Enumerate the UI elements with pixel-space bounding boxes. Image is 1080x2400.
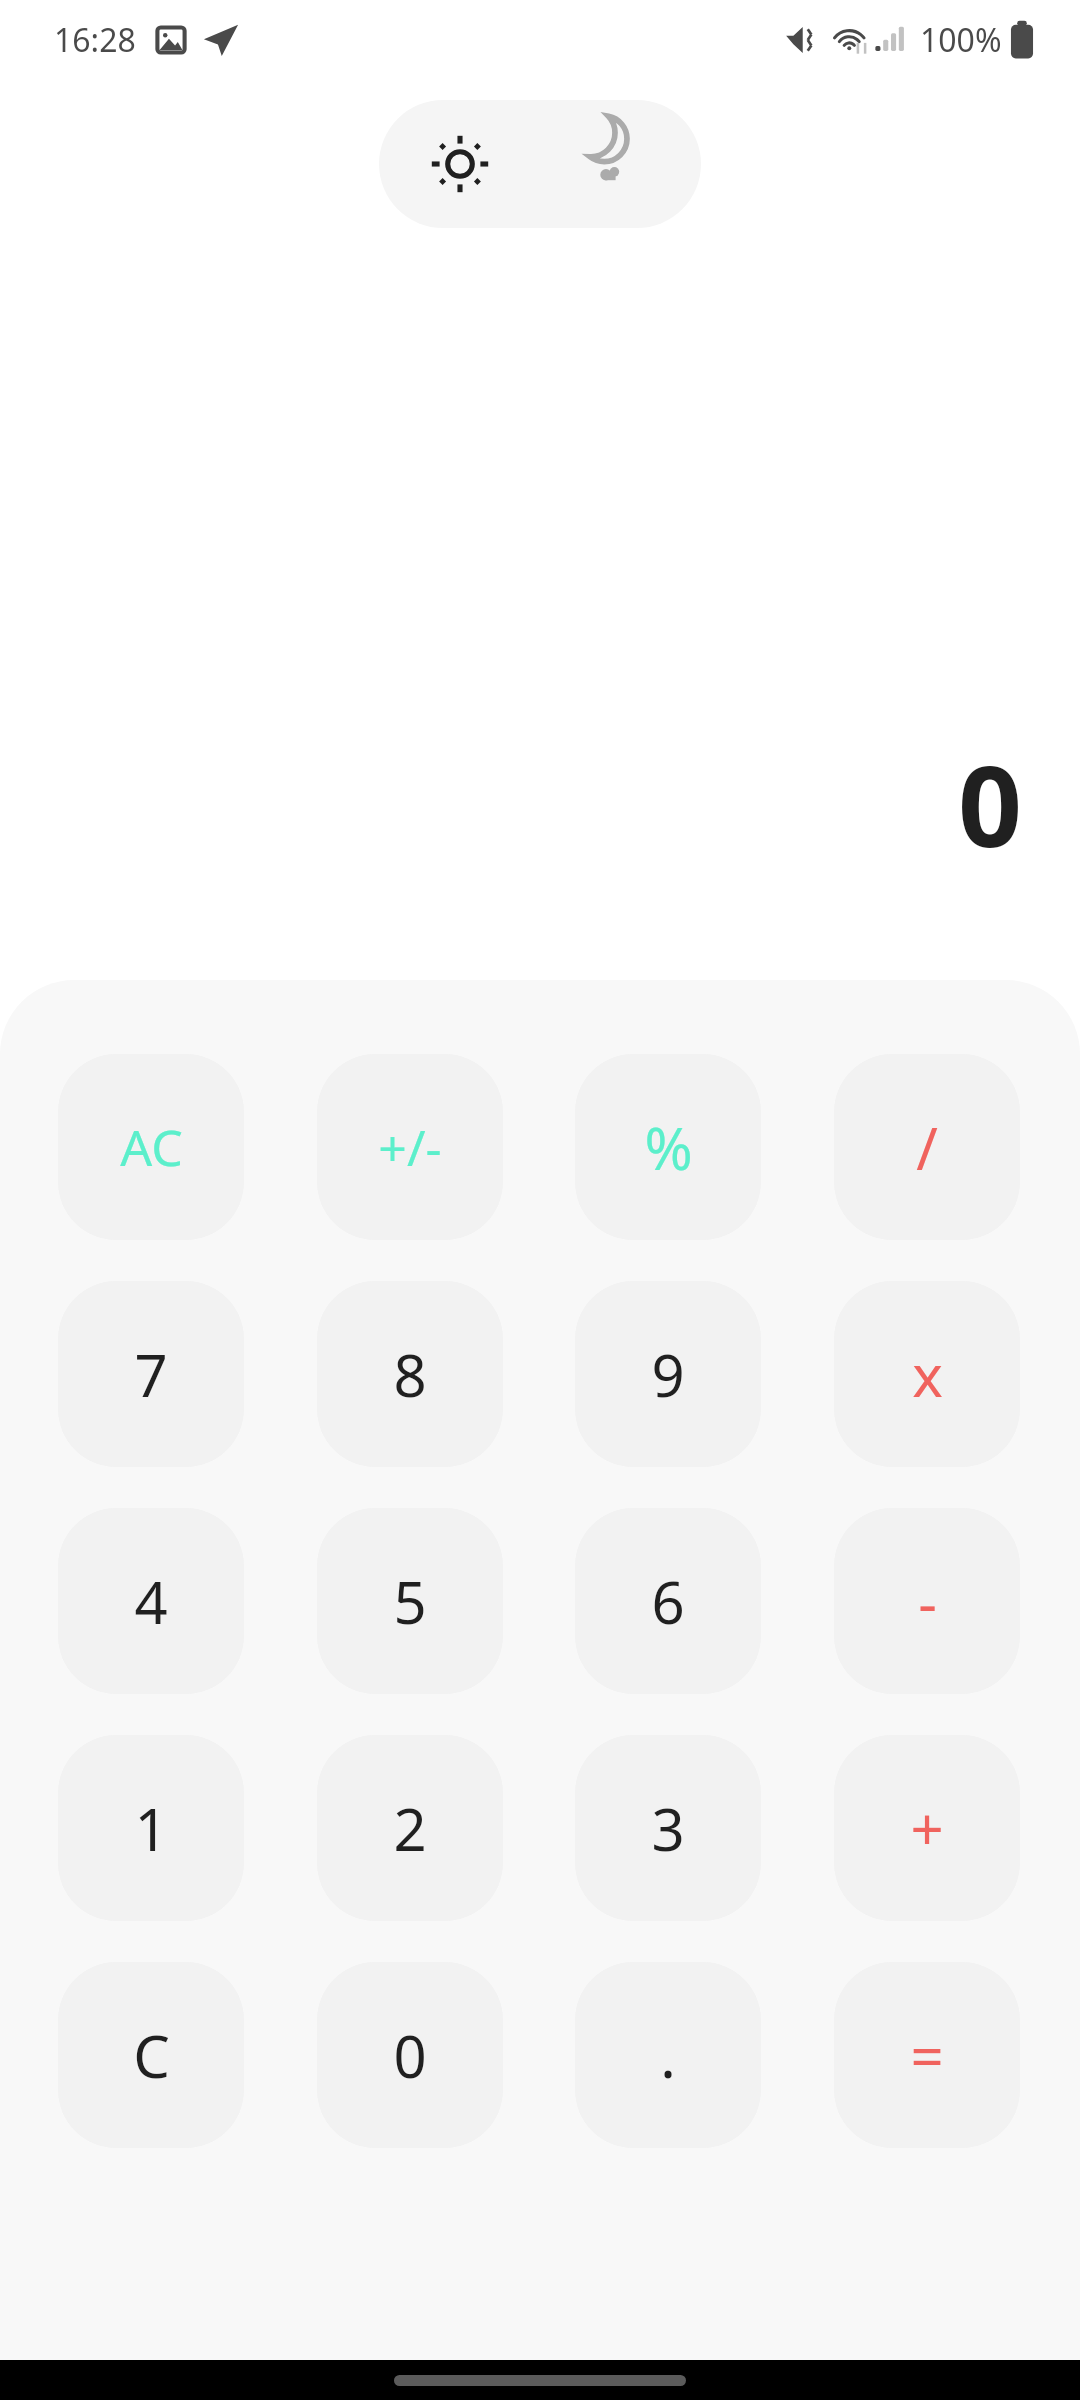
button[interactable]: 3 [575,1735,761,1921]
button[interactable]: Equals [834,1962,1020,2148]
button[interactable]: Multiply [834,1281,1020,1467]
button[interactable]: Divide [834,1054,1020,1240]
button[interactable]: 1 [58,1735,244,1921]
button[interactable]: 0 [317,1962,503,2148]
button[interactable]: 6 [575,1508,761,1694]
staticText: 6 [651,1562,685,1641]
staticText: 8 [393,1335,427,1414]
staticText: 9 [651,1335,685,1414]
staticText: 7 [134,1335,168,1414]
staticText: C [133,2016,170,2095]
staticText: x [912,1335,943,1414]
staticText: 3 [651,1789,685,1868]
button[interactable]: Minus [834,1508,1020,1694]
button[interactable]: 5 [317,1508,503,1694]
button[interactable]: 2 [317,1735,503,1921]
staticText: 0 [393,2016,427,2095]
staticText: - [918,1562,937,1641]
staticText: / [916,1108,938,1187]
staticText: 2 [393,1789,427,1868]
button[interactable]: 7 [58,1281,244,1467]
staticText: 0 [957,727,1022,880]
staticText: 100% [920,18,1002,62]
button[interactable]: 8 [317,1281,503,1467]
button[interactable]: Negate [317,1054,503,1240]
button[interactable]: 9 [575,1281,761,1467]
button[interactable]: 4 [58,1508,244,1694]
staticText: +/- [378,1113,442,1181]
staticText: AC [120,1113,183,1181]
staticText: 5 [393,1562,427,1641]
button[interactable]: Percent [575,1054,761,1240]
staticText: 4 [134,1562,168,1641]
staticText: = [910,2016,944,2095]
button[interactable]: Decimal point [575,1962,761,2148]
button[interactable]: Dark theme [540,100,701,228]
staticText: % [644,1108,693,1187]
button[interactable]: All clear [58,1054,244,1240]
button[interactable]: Plus [834,1735,1020,1921]
button[interactable]: Light theme [379,100,540,228]
staticText: . [660,2016,676,2095]
button[interactable]: Clear [58,1962,244,2148]
staticText: + [910,1789,944,1868]
staticText: 1 [134,1789,168,1868]
staticText: 16:28 [54,18,136,62]
